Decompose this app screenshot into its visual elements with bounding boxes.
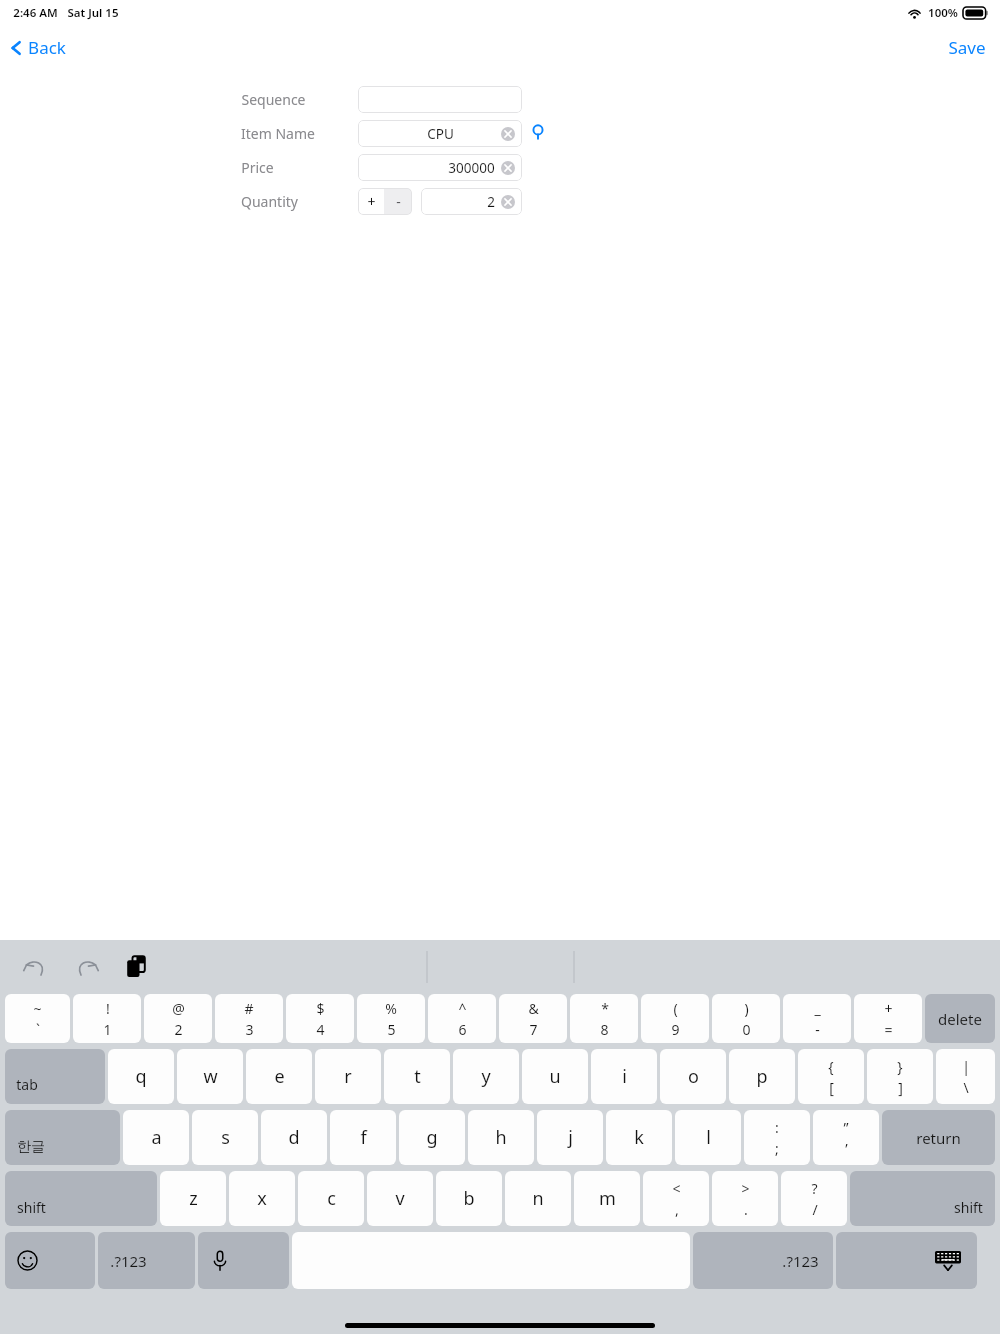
button[interactable]: > bbox=[712, 1171, 778, 1226]
staticText: 2 bbox=[174, 1020, 183, 1039]
button[interactable]: return bbox=[882, 1110, 995, 1165]
button[interactable]: ! bbox=[73, 994, 141, 1043]
button[interactable]: o bbox=[660, 1049, 726, 1104]
staticText: ^ bbox=[458, 999, 467, 1018]
staticText: 8 bbox=[600, 1020, 609, 1039]
button[interactable]: b bbox=[436, 1171, 502, 1226]
button[interactable]: r bbox=[315, 1049, 381, 1104]
button[interactable]: Clear item name bbox=[501, 127, 515, 141]
staticText: Save bbox=[948, 36, 986, 59]
button[interactable]: 300000 bbox=[358, 154, 522, 181]
button[interactable]: | bbox=[936, 1049, 995, 1104]
staticText: : bbox=[775, 1118, 779, 1137]
button[interactable]: Back bbox=[0, 31, 80, 64]
button[interactable]: q bbox=[108, 1049, 174, 1104]
button[interactable]: y bbox=[453, 1049, 519, 1104]
button[interactable]: 한글 bbox=[5, 1110, 120, 1165]
button[interactable]: w bbox=[177, 1049, 243, 1104]
button[interactable]: + bbox=[854, 994, 922, 1043]
button[interactable]: z bbox=[160, 1171, 226, 1226]
button[interactable]: shift bbox=[5, 1171, 157, 1226]
button[interactable]: delete bbox=[925, 994, 995, 1043]
button[interactable]: } bbox=[867, 1049, 933, 1104]
button[interactable]: Increase quantity bbox=[358, 188, 384, 215]
button[interactable]: Dictation bbox=[198, 1232, 289, 1289]
staticText: ” bbox=[843, 1118, 849, 1137]
staticText: 100% bbox=[928, 5, 958, 21]
button[interactable]: ~ bbox=[5, 994, 70, 1043]
staticText: ? bbox=[811, 1179, 818, 1198]
button[interactable]: x bbox=[229, 1171, 295, 1226]
staticText: Quantity bbox=[241, 192, 298, 211]
button[interactable]: f bbox=[330, 1110, 396, 1165]
button[interactable]: i bbox=[591, 1049, 657, 1104]
button[interactable]: Hide keyboard bbox=[836, 1232, 977, 1289]
button[interactable]: # bbox=[215, 994, 283, 1043]
button[interactable]: c bbox=[298, 1171, 364, 1226]
button[interactable]: d bbox=[261, 1110, 327, 1165]
button[interactable]: CPU bbox=[358, 120, 522, 147]
staticText: & bbox=[528, 999, 539, 1018]
button[interactable]: Emoji bbox=[5, 1232, 95, 1289]
button[interactable]: Redo bbox=[70, 952, 105, 982]
button[interactable]: l bbox=[675, 1110, 741, 1165]
button[interactable]: t bbox=[384, 1049, 450, 1104]
staticText: , bbox=[675, 1200, 679, 1219]
button[interactable]: .?123 bbox=[98, 1232, 195, 1289]
staticText: ] bbox=[898, 1078, 903, 1097]
staticText: / bbox=[812, 1200, 818, 1219]
staticText: h bbox=[495, 1125, 507, 1150]
staticText: 3 bbox=[245, 1020, 254, 1039]
button[interactable]: Undo bbox=[17, 952, 52, 982]
button[interactable]: n bbox=[505, 1171, 571, 1226]
button[interactable]: * bbox=[570, 994, 638, 1043]
button[interactable]: ) bbox=[712, 994, 780, 1043]
button[interactable]: Paste bbox=[121, 951, 151, 983]
button[interactable]: _ bbox=[783, 994, 851, 1043]
staticText: 4 bbox=[316, 1020, 325, 1039]
button[interactable]: Clear quantity bbox=[501, 195, 515, 209]
staticText: c bbox=[327, 1186, 336, 1211]
button[interactable]: .?123 bbox=[693, 1232, 833, 1289]
button[interactable]: @ bbox=[144, 994, 212, 1043]
button[interactable]: Search item bbox=[529, 121, 547, 146]
button[interactable]: s bbox=[192, 1110, 258, 1165]
button[interactable]: 2 bbox=[421, 188, 522, 215]
button[interactable]: shift bbox=[850, 1171, 995, 1226]
button[interactable]: ^ bbox=[428, 994, 496, 1043]
staticText: ~ bbox=[33, 999, 42, 1018]
button[interactable]: Decrease quantity bbox=[384, 188, 412, 215]
button[interactable]: g bbox=[399, 1110, 465, 1165]
button[interactable]: e bbox=[246, 1049, 312, 1104]
button[interactable]: Save bbox=[934, 29, 1000, 66]
button[interactable] bbox=[358, 86, 522, 113]
button[interactable]: ? bbox=[781, 1171, 847, 1226]
button[interactable]: $ bbox=[286, 994, 354, 1043]
staticText: } bbox=[897, 1057, 903, 1076]
button[interactable]: h bbox=[468, 1110, 534, 1165]
staticText: + bbox=[884, 999, 893, 1018]
button[interactable]: & bbox=[499, 994, 567, 1043]
button[interactable]: { bbox=[798, 1049, 864, 1104]
staticText: a bbox=[151, 1125, 162, 1150]
button[interactable]: Clear price bbox=[501, 161, 515, 175]
staticText: d bbox=[288, 1125, 300, 1150]
button[interactable]: : bbox=[744, 1110, 810, 1165]
button[interactable]: tab bbox=[5, 1049, 105, 1104]
button[interactable]: < bbox=[643, 1171, 709, 1226]
staticText: ( bbox=[673, 999, 678, 1018]
button[interactable]: m bbox=[574, 1171, 640, 1226]
button[interactable]: v bbox=[367, 1171, 433, 1226]
button[interactable]: k bbox=[606, 1110, 672, 1165]
button[interactable]: u bbox=[522, 1049, 588, 1104]
button[interactable]: % bbox=[357, 994, 425, 1043]
button[interactable]: p bbox=[729, 1049, 795, 1104]
staticText: l bbox=[706, 1125, 711, 1150]
staticText: b bbox=[463, 1186, 475, 1211]
staticText: 7 bbox=[529, 1020, 538, 1039]
button[interactable]: ” bbox=[813, 1110, 879, 1165]
button[interactable]: a bbox=[123, 1110, 189, 1165]
button[interactable]: j bbox=[537, 1110, 603, 1165]
button[interactable]: ( bbox=[641, 994, 709, 1043]
